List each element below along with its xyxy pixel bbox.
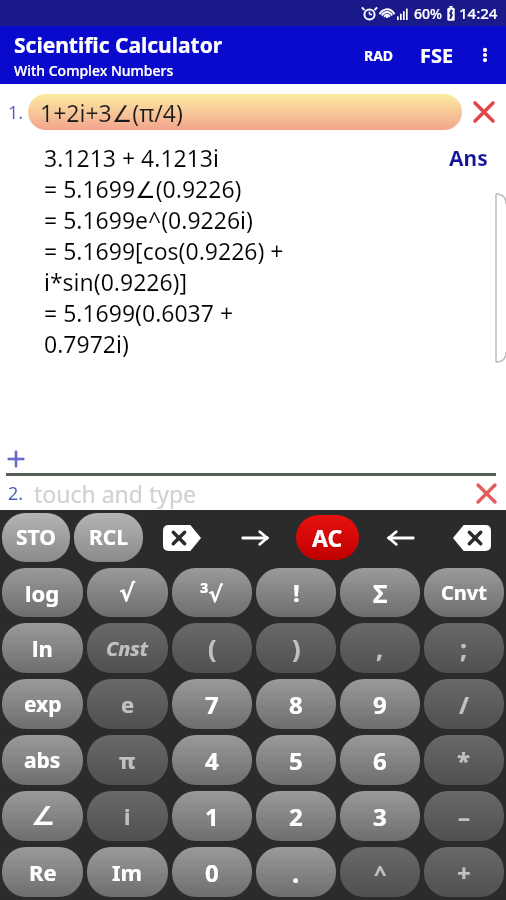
button[interactable]: abs: [2, 735, 83, 785]
button[interactable]: 2: [256, 791, 336, 841]
staticText: 2.: [8, 481, 24, 506]
staticText: ³√: [200, 578, 224, 608]
button[interactable]: Cnvt: [424, 568, 504, 617]
staticText: 6: [373, 744, 387, 777]
staticText: √: [119, 579, 136, 607]
button[interactable]: ∠: [2, 791, 83, 841]
staticText: 2: [289, 800, 303, 833]
staticText: 4: [205, 744, 219, 777]
button[interactable]: .: [256, 847, 336, 897]
button[interactable]: Clear line 2: [466, 476, 506, 510]
staticText: (: [208, 631, 217, 665]
button[interactable]: +: [424, 847, 504, 897]
staticText: Ans: [449, 144, 488, 173]
button[interactable]: *: [424, 735, 504, 785]
staticText: 9: [373, 688, 387, 721]
button[interactable]: RCL: [74, 513, 143, 562]
staticText: Cnvt: [441, 579, 487, 606]
staticText: !: [293, 576, 300, 609]
button[interactable]: ³√: [172, 568, 252, 617]
button[interactable]: e: [87, 679, 168, 729]
button[interactable]: 4: [172, 735, 252, 785]
button[interactable]: Cnst: [87, 623, 168, 673]
staticText: RCL: [89, 523, 128, 552]
button[interactable]: 8: [256, 679, 336, 729]
button[interactable]: 9: [340, 679, 420, 729]
staticText: Scientific Calculator: [14, 31, 223, 60]
staticText: exp: [24, 690, 62, 719]
staticText: Cnst: [106, 635, 149, 662]
staticText: .: [292, 855, 300, 890]
staticText: Im: [112, 857, 143, 887]
staticText: Re: [29, 857, 57, 887]
staticText: ∠: [31, 801, 55, 831]
staticText: ): [292, 631, 301, 665]
button[interactable]: AC: [296, 515, 359, 560]
button[interactable]: 1+2i+3∠(π/4): [28, 94, 462, 130]
staticText: /: [459, 688, 469, 721]
staticText: 1: [205, 800, 219, 833]
button[interactable]: Move left: [364, 510, 437, 565]
button[interactable]: 7: [172, 679, 252, 729]
staticText: ,: [376, 631, 384, 665]
button[interactable]: log: [2, 568, 83, 617]
button[interactable]: (: [172, 623, 252, 673]
button[interactable]: ;: [424, 623, 504, 673]
button[interactable]: 3: [340, 791, 420, 841]
staticText: 0: [205, 856, 219, 889]
staticText: = 5.1699∠(0.9226): [44, 173, 242, 204]
staticText: 1+2i+3∠(π/4): [40, 97, 183, 128]
staticText: log: [25, 578, 60, 608]
button[interactable]: Re: [2, 847, 83, 897]
staticText: 5: [289, 744, 303, 777]
staticText: 7: [205, 688, 219, 721]
staticText: 3: [373, 800, 387, 833]
button[interactable]: Σ: [340, 568, 420, 617]
staticText: abs: [24, 746, 61, 775]
staticText: 1.: [8, 100, 24, 125]
staticText: +: [457, 856, 471, 889]
staticText: STO: [16, 523, 56, 552]
button[interactable]: Delete: [437, 510, 506, 565]
button[interactable]: ): [256, 623, 336, 673]
button[interactable]: FSE: [414, 34, 460, 77]
staticText: i*sin(0.9226)]: [44, 266, 188, 297]
button[interactable]: RAD: [358, 38, 400, 73]
staticText: FSE: [420, 42, 454, 69]
button[interactable]: Clear line 1: [462, 90, 506, 134]
staticText: i: [124, 801, 131, 831]
staticText: 3.1213 + 4.1213i: [44, 142, 219, 173]
button[interactable]: 1: [172, 791, 252, 841]
staticText: = 5.1699(0.6037 +: [44, 297, 234, 328]
button[interactable]: More options: [470, 40, 500, 70]
staticText: e: [121, 689, 135, 719]
button[interactable]: STO: [2, 513, 70, 562]
button[interactable]: √: [87, 568, 168, 617]
staticText: 14:24: [459, 3, 498, 23]
button[interactable]: Im: [87, 847, 168, 897]
staticText: touch and type: [34, 478, 197, 509]
button[interactable]: i: [87, 791, 168, 841]
staticText: π: [119, 745, 136, 775]
staticText: 8: [289, 688, 303, 721]
button[interactable]: exp: [2, 679, 83, 729]
staticText: = 5.1699e^(0.9226i): [44, 204, 253, 235]
button[interactable]: 6: [340, 735, 420, 785]
staticText: RAD: [364, 46, 394, 65]
button[interactable]: touch and type: [34, 476, 466, 510]
button[interactable]: ln: [2, 623, 83, 673]
button[interactable]: /: [424, 679, 504, 729]
staticText: With Complex Numbers: [14, 61, 174, 80]
button[interactable]: 0: [172, 847, 252, 897]
button[interactable]: ,: [340, 623, 420, 673]
staticText: *: [457, 744, 471, 777]
staticText: ;: [460, 631, 468, 665]
button[interactable]: π: [87, 735, 168, 785]
button[interactable]: !: [256, 568, 336, 617]
button[interactable]: ^: [340, 847, 420, 897]
button[interactable]: –: [424, 791, 504, 841]
button[interactable]: Delete forward: [145, 510, 218, 565]
button[interactable]: 5: [256, 735, 336, 785]
button[interactable]: Move right: [218, 510, 291, 565]
staticText: –: [458, 800, 470, 833]
